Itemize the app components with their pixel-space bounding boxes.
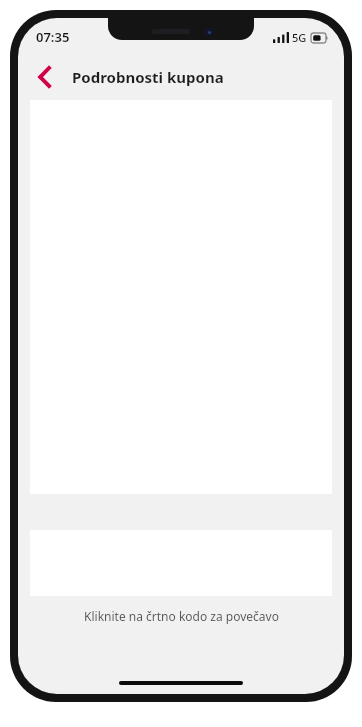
button[interactable]: Back xyxy=(24,57,64,97)
staticText: 5G xyxy=(292,30,307,45)
staticText: Podrobnosti kupona xyxy=(72,67,224,87)
staticText: 07:35 xyxy=(36,28,70,46)
staticText: Kliknite na črtno kodo za povečavo xyxy=(84,608,279,624)
